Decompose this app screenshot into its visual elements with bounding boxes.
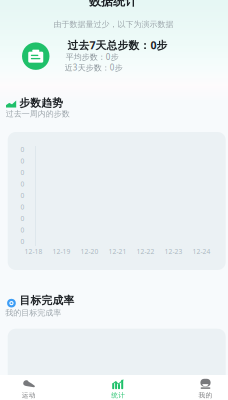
staticText: 12-18 [24, 247, 42, 256]
staticText: 12-24 [192, 247, 210, 256]
staticText: 步数趋势 [19, 96, 63, 109]
staticText: 12-23 [164, 247, 182, 256]
staticText: 0 [20, 191, 24, 200]
staticText: 统计 [111, 391, 125, 399]
staticText: 0 [20, 145, 24, 154]
button[interactable]: 我的 [175, 375, 228, 400]
staticText: 运动 [22, 391, 36, 399]
staticText: 近3天步数：0步 [65, 62, 123, 73]
staticText: 0 [20, 168, 24, 177]
staticText: 过去7天总步数：0步 [67, 38, 167, 52]
staticText: 由于数据量过少，以下为演示数据 [53, 19, 173, 29]
staticText: 我的 [198, 391, 212, 399]
staticText: 0 [20, 237, 24, 246]
staticText: 0 [20, 156, 24, 165]
button[interactable]: 运动 [0, 375, 59, 400]
staticText: 0 [20, 225, 24, 234]
staticText: 数据统计 [89, 0, 137, 9]
staticText: 平均步数：0步 [66, 51, 119, 62]
staticText: 目标完成率 [19, 294, 74, 307]
staticText: 12-20 [80, 247, 98, 256]
staticText: 12-19 [52, 247, 70, 256]
staticText: 0 [20, 179, 24, 188]
staticText: 12-22 [136, 247, 154, 256]
staticText: 过去一周内的步数 [6, 109, 70, 119]
staticText: 我的目标完成率 [5, 308, 61, 318]
staticText: 0 [20, 214, 24, 223]
staticText: 12-21 [108, 247, 126, 256]
button[interactable]: 统计 [88, 375, 148, 400]
staticText: 0 [20, 202, 24, 211]
